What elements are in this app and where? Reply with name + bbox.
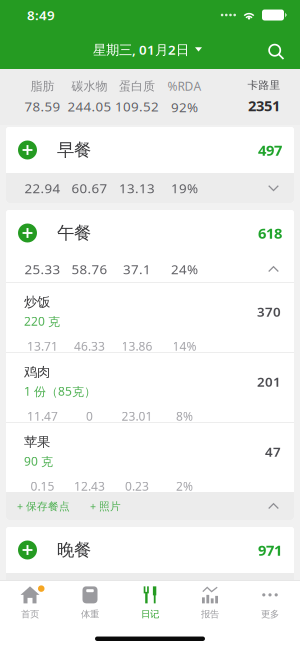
- staticText: 31.2: [28, 579, 56, 597]
- staticText: 23.01: [121, 408, 152, 424]
- staticText: 25.33: [24, 260, 60, 278]
- staticText: 46.33: [74, 338, 105, 354]
- staticText: 13.13: [119, 179, 155, 197]
- staticText: 8:49: [27, 6, 55, 24]
- staticText: 44.0: [123, 579, 151, 597]
- staticText: 0: [86, 408, 93, 424]
- staticText: 971: [258, 540, 282, 560]
- button[interactable]: Collapse lunch: [268, 492, 294, 520]
- staticText: 脂肪: [30, 79, 54, 93]
- staticText: 2%: [176, 478, 193, 494]
- staticText: 370: [257, 303, 281, 320]
- button[interactable]: 22.94: [6, 173, 294, 203]
- staticText: 13.86: [121, 338, 152, 354]
- staticText: 日记: [141, 608, 159, 620]
- staticText: 苹果: [24, 434, 50, 450]
- staticText: + 保存餐点: [17, 499, 70, 513]
- staticText: 12.43: [74, 478, 105, 494]
- staticText: 22.94: [24, 179, 60, 197]
- staticText: 碳水物: [71, 79, 107, 93]
- staticText: 38%: [171, 579, 198, 597]
- button[interactable]: 晚餐: [6, 527, 294, 573]
- staticText: 8%: [176, 408, 193, 424]
- staticText: 炒饭: [24, 294, 50, 310]
- button[interactable]: Search: [259, 31, 293, 67]
- button[interactable]: 31.2: [6, 573, 294, 603]
- button[interactable]: 苹果: [6, 423, 294, 492]
- staticText: 1 份（85克）: [24, 383, 96, 399]
- staticText: 201: [257, 373, 281, 390]
- staticText: + 照片: [90, 499, 121, 513]
- staticText: 午餐: [57, 222, 91, 244]
- staticText: 58.76: [71, 260, 107, 278]
- staticText: 618: [258, 223, 282, 243]
- button[interactable]: 炒饭: [6, 283, 294, 353]
- staticText: 90 克: [24, 453, 53, 469]
- staticText: 19%: [171, 179, 198, 197]
- staticText: 卡路里: [247, 79, 280, 92]
- staticText: 220 克: [24, 313, 60, 329]
- staticText: 晚餐: [57, 539, 91, 561]
- staticText: 11.47: [27, 408, 58, 424]
- button[interactable]: 日记: [120, 581, 180, 626]
- staticText: 更多: [261, 608, 279, 620]
- staticText: %RDA: [167, 78, 201, 94]
- button[interactable]: 星期三, 01月2日: [84, 33, 211, 65]
- staticText: 244.05: [67, 97, 111, 115]
- staticText: 报告: [201, 608, 219, 620]
- button[interactable]: 鸡肉: [6, 353, 294, 423]
- staticText: 首页: [21, 608, 39, 620]
- staticText: 0.15: [30, 478, 54, 494]
- staticText: 0.23: [125, 478, 149, 494]
- staticText: 78.59: [24, 97, 60, 115]
- staticText: 497: [258, 140, 282, 160]
- staticText: 蛋白质: [119, 79, 155, 93]
- staticText: 24%: [171, 260, 198, 278]
- staticText: 体重: [81, 608, 99, 620]
- button[interactable]: 体重: [60, 581, 120, 626]
- staticText: 鸡肉: [24, 364, 50, 380]
- staticText: 92%: [171, 98, 198, 116]
- staticText: 37.1: [123, 260, 151, 278]
- button[interactable]: 报告: [180, 581, 240, 626]
- staticText: 13.71: [27, 338, 58, 354]
- button[interactable]: 更多: [240, 581, 300, 626]
- staticText: 2351: [248, 96, 280, 115]
- button[interactable]: 25.33: [6, 256, 294, 283]
- button[interactable]: + 保存餐点: [6, 492, 82, 520]
- button[interactable]: 首页: [0, 581, 60, 626]
- staticText: 60.67: [71, 179, 107, 197]
- staticText: 14%: [172, 338, 196, 354]
- staticText: 92.1: [75, 579, 103, 597]
- staticText: 早餐: [57, 139, 91, 161]
- button[interactable]: + 照片: [82, 492, 129, 520]
- staticText: 星期三, 01月2日: [93, 41, 189, 58]
- button[interactable]: 早餐: [6, 127, 294, 173]
- button[interactable]: 午餐: [6, 210, 294, 256]
- staticText: 109.52: [115, 97, 159, 115]
- staticText: 47: [265, 443, 281, 460]
